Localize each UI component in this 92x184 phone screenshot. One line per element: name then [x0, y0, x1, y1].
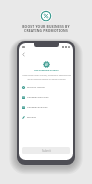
- staticText: Add Shopping Promos: [34, 69, 59, 72]
- staticText: Discount Amount: [27, 86, 45, 89]
- button[interactable]: Remarks: [22, 112, 70, 122]
- button[interactable]: Submit: [22, 147, 70, 154]
- staticText: Campaign Start Date: [27, 96, 49, 99]
- staticText: BOOST YOUR BUSINESS BY: [22, 24, 70, 28]
- staticText: Lorem ipsum dolor sit amet, consectetur …: [22, 74, 71, 80]
- staticText: Submit: [42, 149, 51, 153]
- button[interactable]: Campaign Start Date: [22, 92, 70, 102]
- button[interactable]: Campaign End Date: [22, 102, 70, 112]
- staticText: Remarks: [27, 116, 36, 119]
- button[interactable]: Discount Amount: [22, 82, 70, 92]
- button[interactable]: Back: [21, 52, 26, 57]
- staticText: Campaign End Date: [27, 106, 48, 109]
- staticText: CREATING PROMOTIONS: [24, 28, 68, 32]
